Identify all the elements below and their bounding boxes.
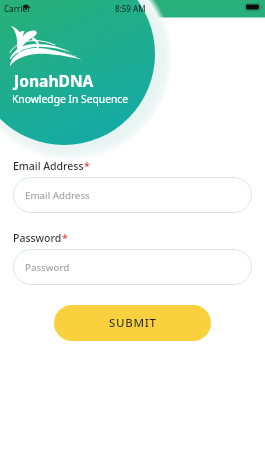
staticText: 8:59 AM <box>115 3 146 14</box>
other: Wi-Fi signal <box>23 3 29 9</box>
staticText: * <box>62 231 68 245</box>
staticText: JonahDNA <box>14 70 94 91</box>
other: JonahDNA whale logo <box>10 24 84 66</box>
staticText: Password <box>13 231 62 245</box>
staticText: Email Address <box>13 159 84 173</box>
button[interactable]: Password <box>13 249 252 285</box>
other: Battery full <box>244 3 262 11</box>
staticText: SUBMIT <box>109 315 157 331</box>
staticText: Carrier <box>4 3 31 14</box>
button[interactable]: Email Address <box>13 177 252 213</box>
staticText: * <box>84 159 90 173</box>
button[interactable]: SUBMIT <box>54 305 211 341</box>
staticText: Email Address <box>25 189 90 202</box>
staticText: Knowledge In Sequence <box>12 92 129 106</box>
staticText: Password <box>25 261 70 274</box>
